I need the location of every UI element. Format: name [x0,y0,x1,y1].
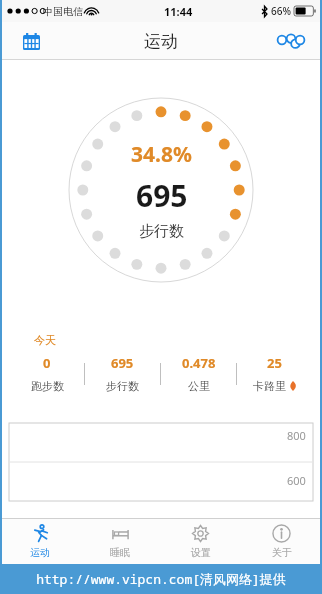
button[interactable]: 0.478 [161,354,236,393]
staticText: 695 [111,354,134,372]
button[interactable]: 睡眠 [80,518,160,564]
staticText: 11:44 [164,4,193,19]
button[interactable]: 关于 [241,518,322,564]
staticText: 运动 [30,546,50,559]
staticText: 34.8% [131,140,192,169]
button[interactable]: 运动 [0,518,80,564]
staticText: 今天 [34,333,56,347]
staticText: 运动 [144,31,178,52]
staticText: 25 [267,354,282,372]
staticText: 66% [271,4,291,18]
staticText: 中国电信 [43,5,83,18]
staticText: 695 [136,175,188,216]
staticText: 600 [287,473,306,488]
staticText: 设置 [191,546,211,559]
button[interactable]: Device connection [272,22,310,60]
button[interactable]: Calendar [14,24,48,58]
staticText: 步行数 [139,222,184,241]
button[interactable]: 设置 [160,518,241,564]
staticText: 步行数 [106,379,139,393]
staticText: http://www.vipcn.com[清风网络]提供 [36,570,286,588]
button[interactable]: 0 [10,354,84,393]
staticText: 跑步数 [31,379,64,393]
staticText: 睡眠 [110,546,130,559]
staticText: 公里 [188,379,210,393]
button[interactable]: 695 [85,354,160,393]
button[interactable]: 25 [237,354,312,393]
staticText: 卡路里 [253,379,286,393]
staticText: 关于 [272,546,292,559]
staticText: 0 [43,354,51,372]
staticText: 0.478 [182,354,216,372]
staticText: 800 [287,428,306,443]
